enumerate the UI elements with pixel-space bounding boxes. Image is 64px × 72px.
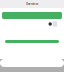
button[interactable] — [2, 12, 62, 19]
staticText: Overview — [26, 2, 38, 6]
